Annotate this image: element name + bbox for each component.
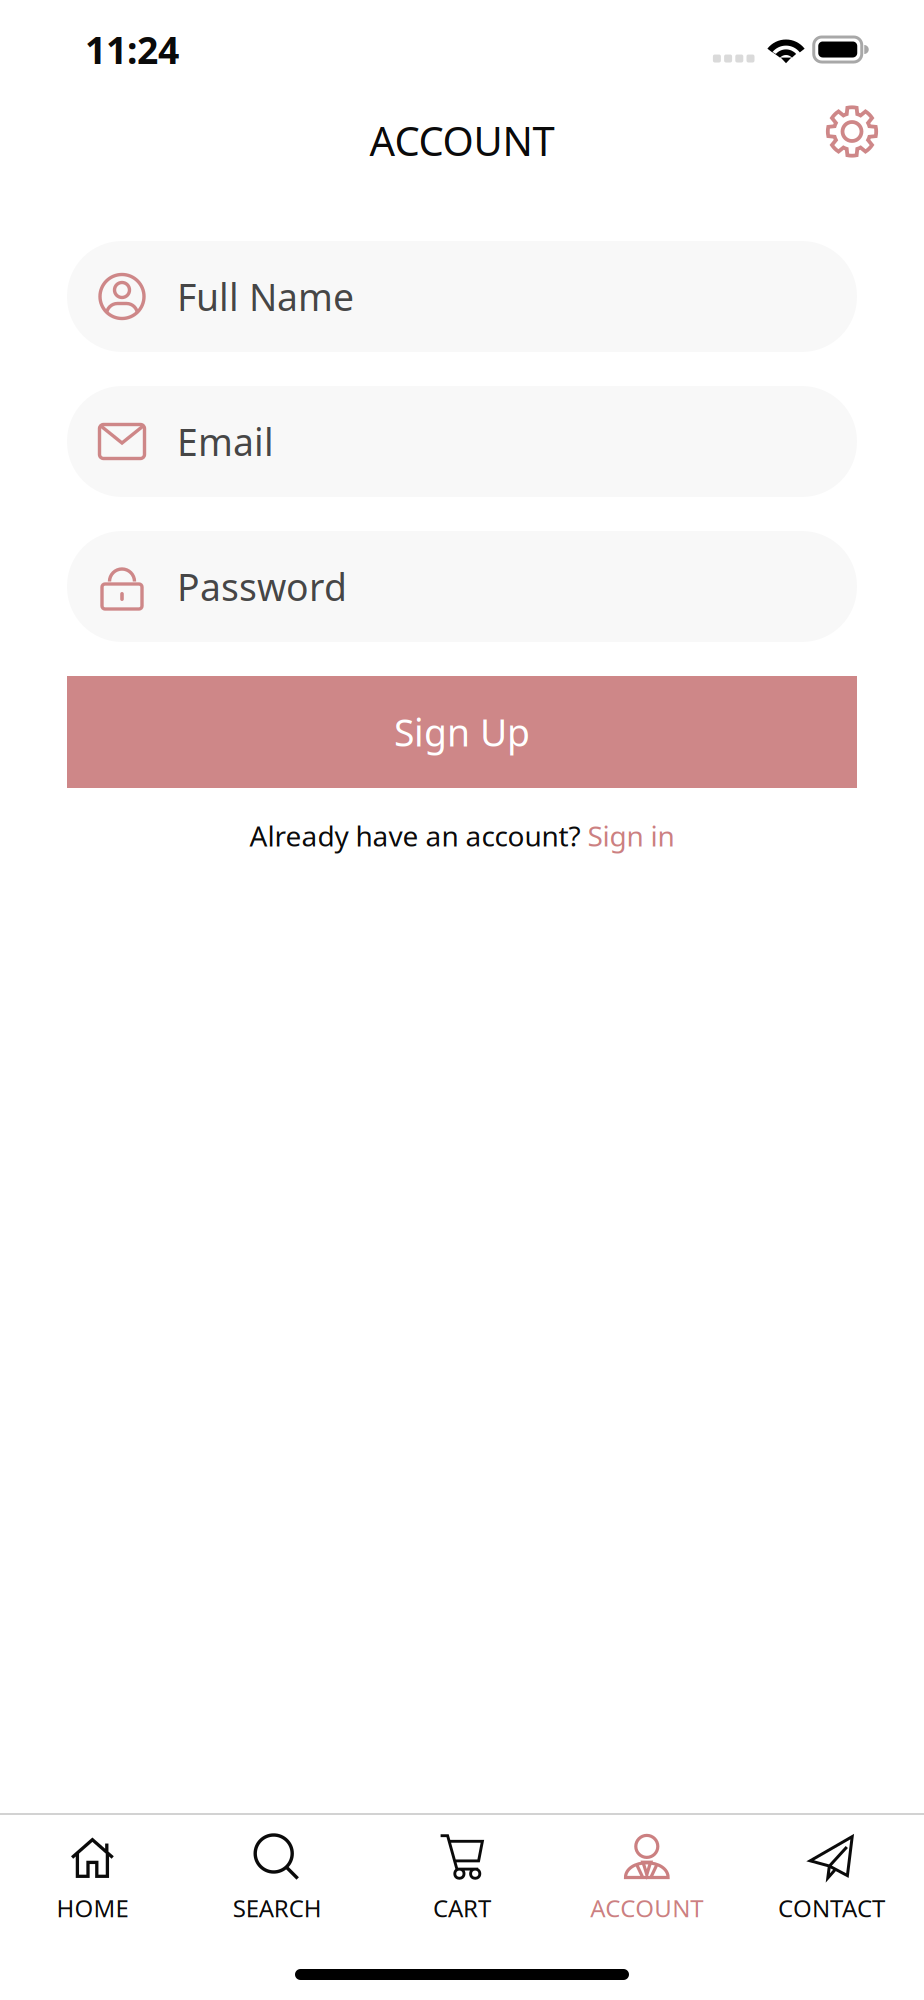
staticText: CART <box>433 1892 491 1924</box>
button[interactable]: Settings <box>826 105 878 157</box>
staticText: Sign in <box>580 817 674 854</box>
staticText: 11:24 <box>85 25 179 74</box>
staticText: Password <box>177 562 347 611</box>
staticText: HOME <box>56 1892 128 1924</box>
staticText: Already have an account? <box>249 817 580 854</box>
staticText: Email <box>177 417 274 466</box>
button[interactable]: Already have an account? <box>249 788 674 864</box>
button[interactable]: ACCOUNT <box>554 1815 739 1934</box>
staticText: ACCOUNT <box>590 1892 703 1924</box>
button[interactable]: CART <box>370 1815 554 1934</box>
button[interactable]: SEARCH <box>185 1815 370 1934</box>
button[interactable]: CONTACT <box>739 1815 924 1934</box>
button[interactable]: Password <box>67 531 857 642</box>
button[interactable]: Email <box>67 386 857 497</box>
staticText: ACCOUNT <box>369 114 554 167</box>
button[interactable]: HOME <box>0 1815 185 1934</box>
staticText: SEARCH <box>233 1892 322 1924</box>
button[interactable]: Full Name <box>67 241 857 352</box>
staticText: Full Name <box>177 272 354 321</box>
button[interactable]: Sign Up <box>67 676 857 788</box>
staticText: Sign Up <box>394 707 530 757</box>
staticText: CONTACT <box>778 1892 885 1924</box>
